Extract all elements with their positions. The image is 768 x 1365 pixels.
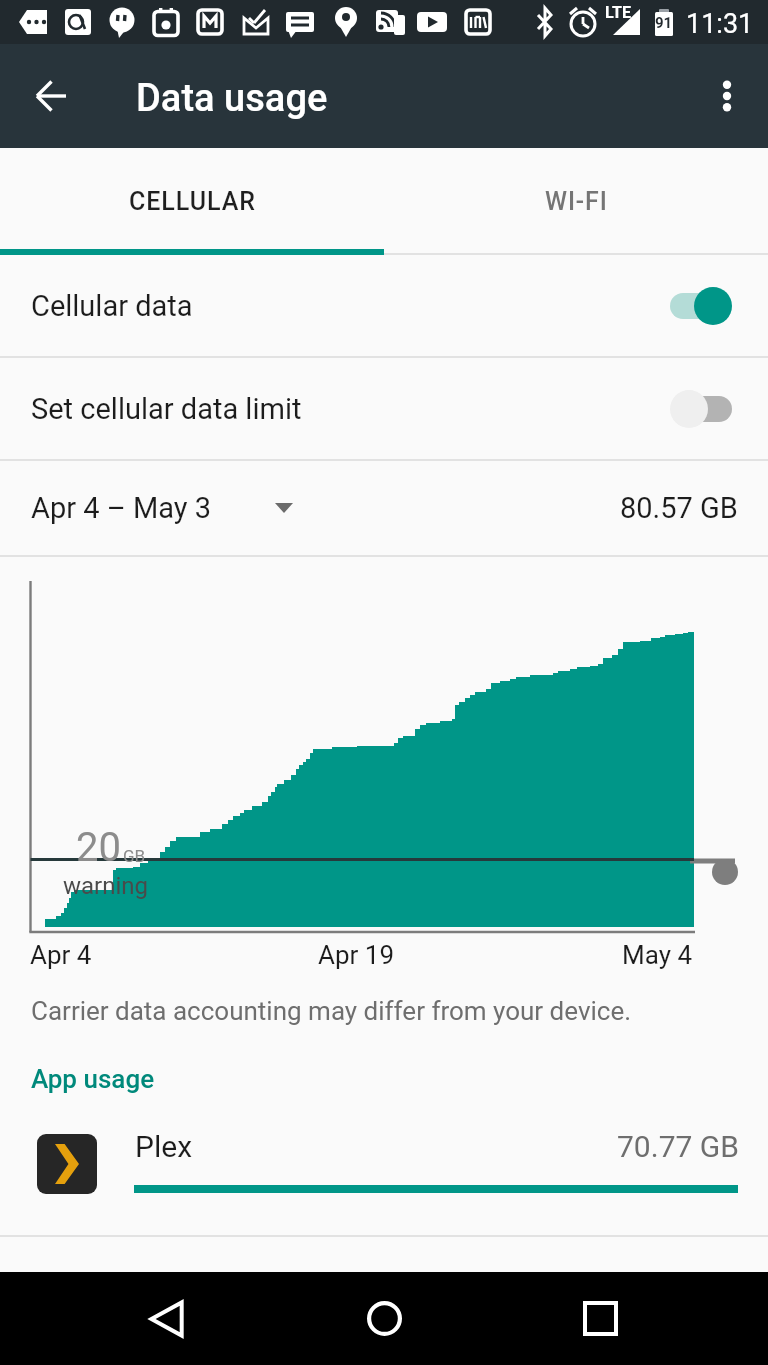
button[interactable]: Home xyxy=(336,1272,432,1365)
staticText: Plex xyxy=(135,1129,193,1164)
button[interactable]: Recent apps xyxy=(552,1272,648,1365)
staticText: LTE xyxy=(605,3,631,22)
staticText: 70.77 GB xyxy=(617,1129,739,1164)
button[interactable]: Plex xyxy=(0,1108,768,1235)
staticText: 91 xyxy=(655,14,673,32)
staticText: 11:31 xyxy=(686,8,754,40)
button[interactable]: Set cellular data limit xyxy=(0,358,768,459)
staticText: Apr 4 xyxy=(30,940,92,970)
staticText: 80.57 GB xyxy=(620,491,738,525)
staticText: CELLULAR xyxy=(129,187,256,216)
button[interactable]: Navigate up xyxy=(16,60,88,132)
button[interactable]: Back xyxy=(120,1272,216,1365)
staticText: App usage xyxy=(31,1064,155,1094)
button[interactable]: Cellular data xyxy=(0,255,768,356)
button[interactable]: Apr 4 – May 3 xyxy=(0,461,768,555)
button[interactable]: CELLULAR xyxy=(0,148,384,255)
staticText: May 4 xyxy=(622,940,693,970)
staticText: WI-FI xyxy=(545,187,608,216)
staticText: Apr 4 – May 3 xyxy=(31,491,212,525)
staticText: 20 xyxy=(76,824,121,871)
staticText: Data usage xyxy=(136,76,328,121)
staticText: Apr 19 xyxy=(318,940,395,970)
button[interactable]: WI-FI xyxy=(384,148,768,255)
staticText: warning xyxy=(63,872,149,900)
button[interactable]: More options xyxy=(696,60,768,132)
staticText: Carrier data accounting may differ from … xyxy=(31,996,632,1026)
staticText: GB xyxy=(123,846,146,866)
staticText: Set cellular data limit xyxy=(31,392,302,426)
staticText: Cellular data xyxy=(31,289,193,323)
